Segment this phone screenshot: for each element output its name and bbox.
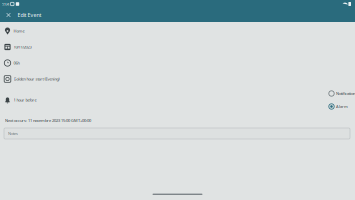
staticText: Notification: [336, 91, 355, 96]
button[interactable]: 10/11/2023: [0, 39, 355, 55]
staticText: Next occurs: 11 novembre 2023 15:00 GMT+…: [5, 118, 91, 123]
button[interactable]: Alarm: [328, 102, 348, 110]
button[interactable]: Notes: [0, 128, 355, 139]
button[interactable]: Golden hour start (Evening): [0, 71, 355, 87]
staticText: Golden hour start (Evening): [13, 76, 59, 82]
staticText: 1 hour before: [13, 97, 36, 103]
staticText: Edit Event: [17, 11, 41, 19]
button[interactable]: 1 hour before: [0, 92, 164, 108]
staticText: 9:04: [2, 1, 9, 7]
button[interactable]: Notification: [328, 89, 355, 97]
staticText: 06h: [13, 60, 19, 66]
staticText: Home: [13, 28, 24, 34]
button[interactable]: 06h: [0, 55, 355, 71]
staticText: Alarm: [336, 104, 348, 109]
staticText: 10/11/2023: [13, 44, 31, 50]
staticText: Notes: [8, 131, 18, 136]
button[interactable]: Close: [2, 8, 15, 22]
button[interactable]: Home: [0, 23, 355, 39]
